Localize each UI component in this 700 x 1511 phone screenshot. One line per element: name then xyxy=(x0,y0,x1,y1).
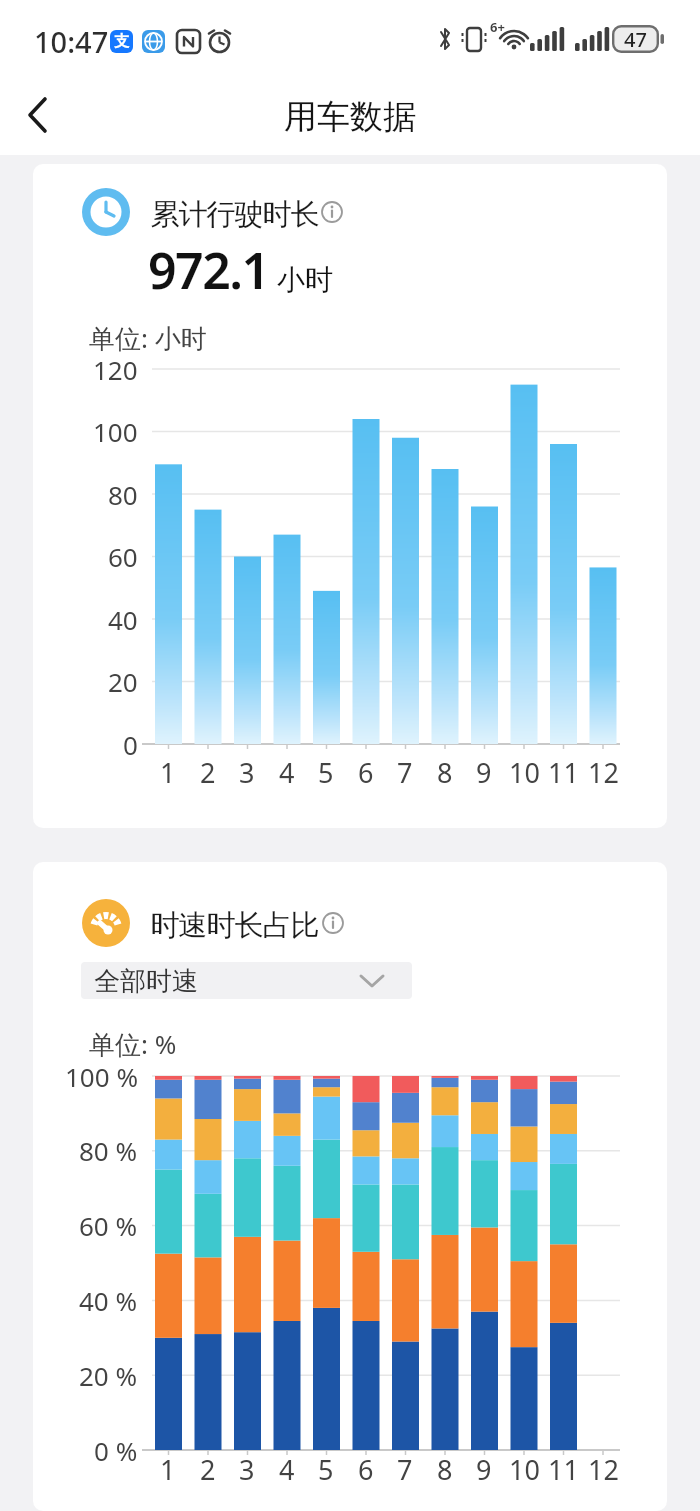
staticText: 972.1 xyxy=(148,236,269,304)
staticText: 0 % xyxy=(94,1433,138,1467)
staticText: 小时 xyxy=(277,262,333,297)
staticText: 60 % xyxy=(79,1208,138,1242)
staticText: 60 xyxy=(108,539,138,573)
staticText: 5 xyxy=(318,1451,334,1485)
staticText: 9 xyxy=(476,754,492,788)
button[interactable] xyxy=(322,912,346,936)
staticText: 100 % xyxy=(65,1059,138,1093)
staticText: 80 % xyxy=(79,1133,138,1167)
staticText: 1 xyxy=(160,1451,176,1485)
staticText: 11 xyxy=(548,754,579,788)
staticText: 单位: % xyxy=(89,1026,177,1062)
button[interactable] xyxy=(321,201,345,225)
staticText: 20 xyxy=(108,664,138,698)
staticText: 10 xyxy=(509,754,540,788)
staticText: 2 xyxy=(200,1451,216,1485)
staticText: 全部时速 xyxy=(94,965,198,998)
staticText: 用车数据 xyxy=(284,96,416,138)
staticText: 7 xyxy=(397,1451,413,1485)
button[interactable] xyxy=(14,91,62,139)
staticText: 6 xyxy=(358,1451,374,1485)
staticText: 4 xyxy=(279,754,295,788)
staticText: 40 % xyxy=(79,1283,138,1317)
staticText: 4 xyxy=(279,1451,295,1485)
staticText: 3 xyxy=(239,1451,255,1485)
staticText: 11 xyxy=(548,1451,579,1485)
staticText: 累计行驶时长 xyxy=(151,196,319,233)
staticText: 7 xyxy=(397,754,413,788)
staticText: 10:47 xyxy=(34,22,109,61)
staticText: 80 xyxy=(108,477,138,511)
staticText: 0 xyxy=(123,727,138,761)
staticText: 12 xyxy=(588,1451,619,1485)
staticText: 9 xyxy=(476,1451,492,1485)
staticText: 5 xyxy=(318,754,334,788)
staticText: 8 xyxy=(437,754,453,788)
staticText: 20 % xyxy=(79,1358,138,1392)
staticText: 2 xyxy=(200,754,216,788)
staticText: 3 xyxy=(239,754,255,788)
staticText: 8 xyxy=(437,1451,453,1485)
staticText: 10 xyxy=(509,1451,540,1485)
staticText: 支 xyxy=(114,32,129,51)
staticText: 40 xyxy=(108,602,138,636)
staticText: 100 xyxy=(93,414,138,448)
staticText: 时速时长占比 xyxy=(151,907,319,944)
button[interactable]: 全部时速 xyxy=(81,962,412,999)
staticText: 6 xyxy=(358,754,374,788)
staticText: 120 xyxy=(93,352,138,386)
staticText: 12 xyxy=(588,754,619,788)
staticText: 6+ xyxy=(490,18,505,36)
staticText: 单位: 小时 xyxy=(89,320,207,356)
staticText: 1 xyxy=(160,754,176,788)
staticText: 47 xyxy=(624,26,647,53)
